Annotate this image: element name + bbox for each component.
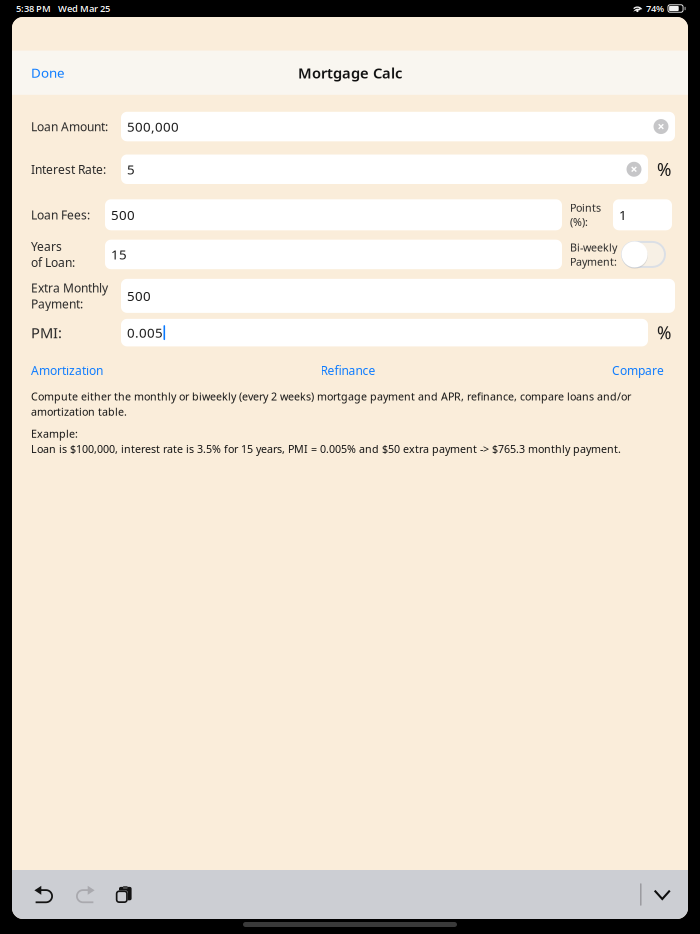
staticText: Bi-weekly <box>570 240 617 254</box>
staticText: 0.005 <box>127 324 163 341</box>
staticText: Example: <box>31 427 78 441</box>
staticText: Payment: <box>570 254 617 269</box>
staticText: % <box>657 158 671 181</box>
staticText: Payment: <box>31 296 83 312</box>
button[interactable]: Refinance <box>320 362 375 378</box>
staticText: Extra Monthly <box>31 280 108 296</box>
staticText: 500 <box>127 287 151 305</box>
staticText: Loan is $100,000, interest rate is 3.5% … <box>31 442 621 456</box>
button[interactable]: Paste <box>104 871 144 918</box>
staticText: Interest Rate: <box>31 161 106 177</box>
staticText: Compute either the monthly or biweekly (… <box>31 389 631 403</box>
staticText: 74% <box>646 2 664 15</box>
staticText: amortization table. <box>31 404 127 419</box>
button[interactable]: Done <box>23 56 73 89</box>
staticText: Loan Fees: <box>31 207 90 223</box>
button[interactable]: Hide keyboard <box>641 870 679 919</box>
button[interactable]: Compare <box>612 362 664 378</box>
staticText: 15 <box>111 246 127 263</box>
staticText: 5 <box>127 160 135 178</box>
staticText: 5:38 PM <box>16 2 51 15</box>
staticText: PMI: <box>31 323 62 342</box>
staticText: Refinance <box>320 362 375 378</box>
staticText: of Loan: <box>31 254 75 270</box>
staticText: Mortgage Calc <box>298 63 402 82</box>
staticText: 500 <box>111 206 135 224</box>
staticText: 1 <box>619 206 627 224</box>
staticText: Done <box>31 64 65 81</box>
staticText: Years <box>31 238 62 254</box>
staticText: (%): <box>570 215 588 229</box>
button[interactable]: Clear text <box>623 157 645 181</box>
staticText: Compare <box>612 362 664 378</box>
staticText: Loan Amount: <box>31 119 108 134</box>
staticText: 500,000 <box>127 118 179 135</box>
staticText: Wed Mar 25 <box>58 2 110 15</box>
staticText: Points <box>570 201 601 215</box>
button[interactable]: Undo <box>23 871 68 917</box>
button[interactable]: Clear text <box>650 115 672 139</box>
button[interactable]: Bi-weekly payment <box>621 241 666 268</box>
staticText: % <box>657 321 671 344</box>
button[interactable]: Amortization <box>31 362 103 378</box>
staticText: Amortization <box>31 362 103 378</box>
button[interactable]: Redo <box>68 871 104 917</box>
